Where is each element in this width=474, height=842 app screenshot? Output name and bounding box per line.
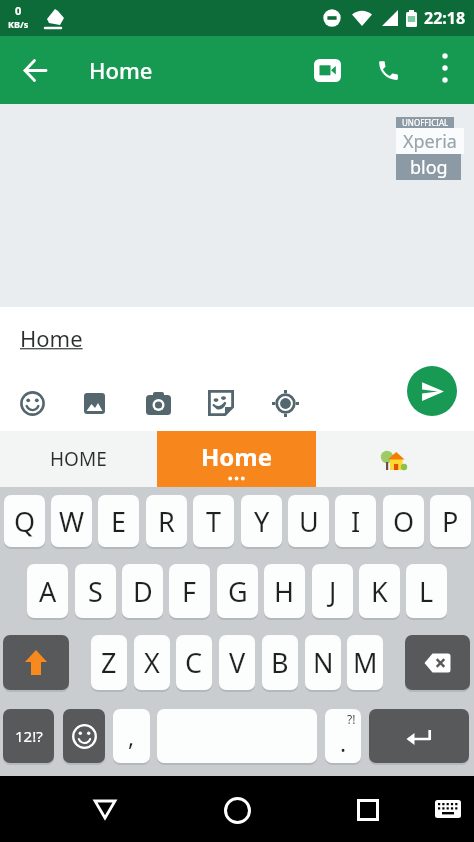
button[interactable] xyxy=(305,48,349,92)
button[interactable]: ?! xyxy=(325,709,361,763)
button[interactable]: V xyxy=(219,635,255,690)
staticText: Z xyxy=(101,644,117,681)
button[interactable]: S xyxy=(75,564,116,618)
button[interactable] xyxy=(138,383,178,423)
staticText: Y xyxy=(254,503,270,540)
staticText: C xyxy=(185,644,203,681)
button[interactable] xyxy=(405,635,470,690)
staticText: D xyxy=(133,573,153,610)
staticText: J xyxy=(329,573,337,610)
button[interactable]: C xyxy=(176,635,212,690)
button[interactable] xyxy=(157,709,317,763)
button[interactable] xyxy=(201,383,241,423)
button[interactable] xyxy=(425,48,465,88)
staticText: Q xyxy=(14,503,36,540)
staticText: HOME xyxy=(50,446,107,472)
staticText: . xyxy=(340,727,347,758)
staticText: 22:18 xyxy=(424,7,466,29)
button[interactable]: , xyxy=(113,709,150,763)
staticText: X xyxy=(144,644,160,681)
staticText: 12!? xyxy=(15,726,43,746)
button[interactable]: Y xyxy=(241,495,282,547)
button[interactable] xyxy=(431,794,465,824)
button[interactable]: W xyxy=(51,495,92,547)
staticText: G xyxy=(228,573,248,610)
button[interactable]: G xyxy=(217,564,258,618)
button[interactable]: HOME xyxy=(0,431,157,487)
staticText: UNOFFICIAL xyxy=(402,117,449,128)
staticText: N xyxy=(313,644,334,681)
button[interactable] xyxy=(3,635,69,690)
button[interactable] xyxy=(366,48,410,92)
staticText: W xyxy=(59,503,85,540)
staticText: K xyxy=(371,573,388,610)
staticText: E xyxy=(111,503,127,540)
staticText: L xyxy=(419,573,434,610)
button[interactable]: Q xyxy=(4,495,45,547)
button[interactable]: T xyxy=(193,495,234,547)
button[interactable] xyxy=(75,779,135,839)
button[interactable] xyxy=(207,780,267,840)
button[interactable]: B xyxy=(262,635,298,690)
staticText: Home xyxy=(201,440,273,473)
button[interactable]: A xyxy=(27,564,68,618)
staticText: R xyxy=(158,503,175,540)
button[interactable]: N xyxy=(305,635,341,690)
staticText: F xyxy=(182,573,197,610)
staticText: Xperia xyxy=(403,129,457,154)
staticText: U xyxy=(299,503,319,540)
button[interactable]: I xyxy=(335,495,376,547)
staticText: A xyxy=(39,573,57,610)
button[interactable] xyxy=(74,383,114,423)
staticText: Home xyxy=(89,55,153,85)
staticText: M xyxy=(353,644,378,681)
button[interactable]: Z xyxy=(91,635,127,690)
button[interactable]: F xyxy=(169,564,210,618)
button[interactable] xyxy=(63,709,105,763)
staticText: P xyxy=(442,503,459,540)
button[interactable]: X xyxy=(134,635,170,690)
button[interactable]: Home xyxy=(157,431,316,487)
button[interactable] xyxy=(369,709,469,763)
button[interactable]: K xyxy=(359,564,400,618)
button[interactable]: R xyxy=(146,495,187,547)
button[interactable]: D xyxy=(122,564,163,618)
button[interactable]: P xyxy=(430,495,471,547)
button[interactable] xyxy=(407,366,457,416)
staticText: KB/s xyxy=(8,18,29,30)
button[interactable]: E xyxy=(98,495,139,547)
staticText: I xyxy=(351,503,361,540)
button[interactable] xyxy=(12,383,52,423)
staticText: 0 xyxy=(15,3,22,18)
button[interactable]: U xyxy=(288,495,329,547)
button[interactable]: L xyxy=(406,564,447,618)
button[interactable] xyxy=(13,48,57,92)
staticText: S xyxy=(88,573,103,610)
button[interactable] xyxy=(338,780,398,840)
staticText: B xyxy=(271,644,289,681)
button[interactable] xyxy=(355,431,431,487)
button[interactable]: Home xyxy=(20,323,83,353)
button[interactable] xyxy=(265,383,305,423)
button[interactable]: O xyxy=(383,495,424,547)
button[interactable]: J xyxy=(312,564,353,618)
button[interactable]: H xyxy=(264,564,305,618)
staticText: T xyxy=(206,503,222,540)
staticText: V xyxy=(229,644,246,681)
staticText: ?! xyxy=(347,711,356,727)
staticText: O xyxy=(393,503,415,540)
button[interactable]: 12!? xyxy=(3,709,54,763)
button[interactable]: M xyxy=(347,635,383,690)
staticText: blog xyxy=(410,155,448,180)
staticText: , xyxy=(128,721,135,752)
staticText: H xyxy=(274,573,295,610)
